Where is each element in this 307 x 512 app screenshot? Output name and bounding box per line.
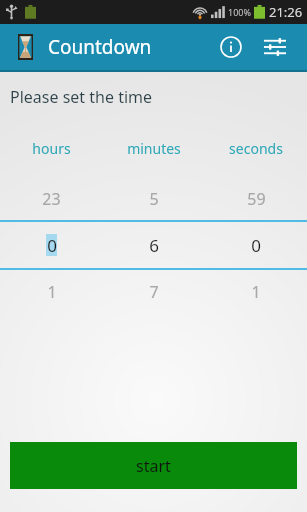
button[interactable]: 5 <box>103 178 205 220</box>
staticText: 59 <box>247 188 266 210</box>
button[interactable]: 7 <box>103 270 205 314</box>
button[interactable]: 1 <box>0 270 103 314</box>
staticText: 5 <box>149 188 159 210</box>
staticText: minutes <box>127 139 181 158</box>
staticText: seconds <box>229 139 283 158</box>
staticText: Countdown <box>48 34 152 60</box>
staticText: 1 <box>251 281 261 303</box>
staticText: start <box>136 455 171 477</box>
staticText: 6 <box>149 234 159 257</box>
staticText: 7 <box>149 281 159 303</box>
button[interactable]: 59 <box>205 178 307 220</box>
staticText: 0 <box>47 234 57 257</box>
button[interactable]: 1 <box>205 270 307 314</box>
button[interactable]: Info <box>209 25 253 69</box>
staticText: 100% <box>228 6 251 18</box>
button[interactable]: 0 <box>0 222 103 268</box>
staticText: hours <box>32 139 71 158</box>
staticText: 0 <box>251 234 261 257</box>
staticText: 23 <box>42 188 61 210</box>
staticText: 21:26 <box>269 3 303 21</box>
staticText: 1 <box>47 281 57 303</box>
staticText: Please set the time <box>10 86 153 108</box>
button[interactable]: 0 <box>205 222 307 268</box>
button[interactable]: Settings <box>253 25 297 69</box>
button[interactable]: start <box>10 442 297 489</box>
button[interactable]: 23 <box>0 178 103 220</box>
button[interactable]: 6 <box>103 222 205 268</box>
